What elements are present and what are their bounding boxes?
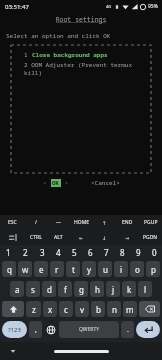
button[interactable]: 0: [146, 245, 162, 259]
button[interactable]: —: [47, 215, 70, 230]
button[interactable]: PGUP: [139, 215, 162, 230]
button[interactable]: k: [122, 281, 136, 297]
button[interactable]: ,: [29, 321, 42, 338]
staticText: s: [31, 284, 35, 295]
staticText: PGUP: [144, 219, 158, 226]
button[interactable]: 8: [114, 245, 130, 259]
button[interactable]: 2: [17, 245, 34, 259]
staticText: ↑: [102, 220, 107, 226]
button[interactable]: ?123: [2, 321, 27, 338]
staticText: l: [144, 284, 147, 295]
staticText: 1: [24, 51, 32, 59]
staticText: 2: [23, 247, 28, 258]
button[interactable]: HOME: [70, 215, 93, 230]
button[interactable]: CTRL: [24, 230, 47, 245]
button[interactable]: u: [98, 261, 112, 277]
staticText: END: [122, 219, 133, 226]
button[interactable]: END: [116, 215, 139, 230]
staticText: →: [125, 235, 130, 241]
button[interactable]: h: [90, 281, 104, 297]
button[interactable]: Enter: [136, 321, 160, 338]
button[interactable]: Hide keyboard: [10, 348, 16, 354]
button[interactable]: Change language: [44, 321, 57, 338]
button[interactable]: ↓: [93, 230, 116, 245]
staticText: 2 OOM Adjuster (Prevent termux kill): [24, 61, 151, 77]
button[interactable]: <Cancel>: [91, 179, 120, 187]
staticText: w: [22, 264, 29, 275]
button[interactable]: PGDN: [139, 230, 162, 245]
button[interactable]: a: [10, 281, 24, 297]
staticText: q: [7, 264, 12, 275]
button[interactable]: p: [146, 261, 160, 277]
button[interactable]: x: [43, 301, 57, 317]
button[interactable]: l: [138, 281, 152, 297]
button[interactable]: 5: [66, 245, 82, 259]
staticText: n: [112, 304, 117, 315]
button[interactable]: Tab: [0, 230, 24, 245]
button[interactable]: 6: [82, 245, 98, 259]
staticText: ESC: [8, 219, 17, 226]
staticText: a: [15, 284, 20, 295]
button[interactable]: f: [58, 281, 72, 297]
staticText: 0: [152, 247, 157, 258]
button[interactable]: c: [59, 301, 73, 317]
staticText: Close background apps: [32, 51, 108, 59]
button[interactable]: y: [82, 261, 96, 277]
button[interactable]: 4: [50, 245, 66, 259]
button[interactable]: 1: [0, 245, 17, 259]
staticText: j: [112, 284, 115, 295]
button[interactable]: 3: [34, 245, 50, 259]
staticText: m: [126, 304, 134, 315]
button[interactable]: n: [107, 301, 121, 317]
button[interactable]: w: [18, 261, 32, 277]
staticText: f: [64, 284, 67, 295]
button[interactable]: g: [74, 281, 88, 297]
button[interactable]: m: [123, 301, 137, 317]
button[interactable]: v: [75, 301, 89, 317]
staticText: 9: [136, 247, 141, 258]
button[interactable]: Backspace: [139, 301, 160, 317]
button[interactable]: ←: [70, 230, 93, 245]
staticText: x: [48, 304, 53, 315]
button[interactable]: 9: [130, 245, 146, 259]
button[interactable]: <: [43, 179, 69, 187]
button[interactable]: Shift: [2, 301, 24, 317]
staticText: —: [56, 219, 62, 226]
button[interactable]: ALT: [47, 230, 70, 245]
staticText: <: [43, 179, 51, 187]
button[interactable]: ↑: [93, 215, 116, 230]
button[interactable]: q: [2, 261, 16, 277]
staticText: Select an option and click OK: [6, 32, 111, 40]
button[interactable]: s: [26, 281, 40, 297]
staticText: CTRL: [30, 234, 42, 241]
staticText: k: [127, 284, 132, 295]
staticText: d: [47, 284, 52, 295]
button[interactable]: 2 OOM Adjuster (Prevent termux kill): [24, 61, 151, 77]
button[interactable]: i: [114, 261, 128, 277]
button[interactable]: e: [34, 261, 48, 277]
button[interactable]: b: [91, 301, 105, 317]
staticText: QWERTY: [79, 326, 100, 333]
staticText: ALT: [54, 234, 63, 241]
button[interactable]: 7: [98, 245, 114, 259]
button[interactable]: QWERTY: [59, 321, 119, 338]
button[interactable]: z: [26, 301, 41, 317]
staticText: i: [120, 264, 123, 275]
button[interactable]: t: [66, 261, 80, 277]
staticText: g: [79, 284, 84, 295]
button[interactable]: /: [24, 215, 47, 230]
staticText: HOME: [74, 219, 90, 226]
staticText: PGDN: [143, 234, 158, 241]
button[interactable]: j: [106, 281, 120, 297]
button[interactable]: .: [121, 321, 134, 338]
staticText: 1: [6, 247, 11, 258]
button[interactable]: o: [130, 261, 144, 277]
staticText: h: [95, 284, 100, 295]
button[interactable]: r: [50, 261, 64, 277]
button[interactable]: d: [42, 281, 56, 297]
staticText: 03:51:47: [5, 3, 29, 11]
button[interactable]: 1: [24, 51, 108, 59]
button[interactable]: →: [116, 230, 139, 245]
staticText: 5: [72, 247, 77, 258]
button[interactable]: ESC: [0, 215, 24, 230]
